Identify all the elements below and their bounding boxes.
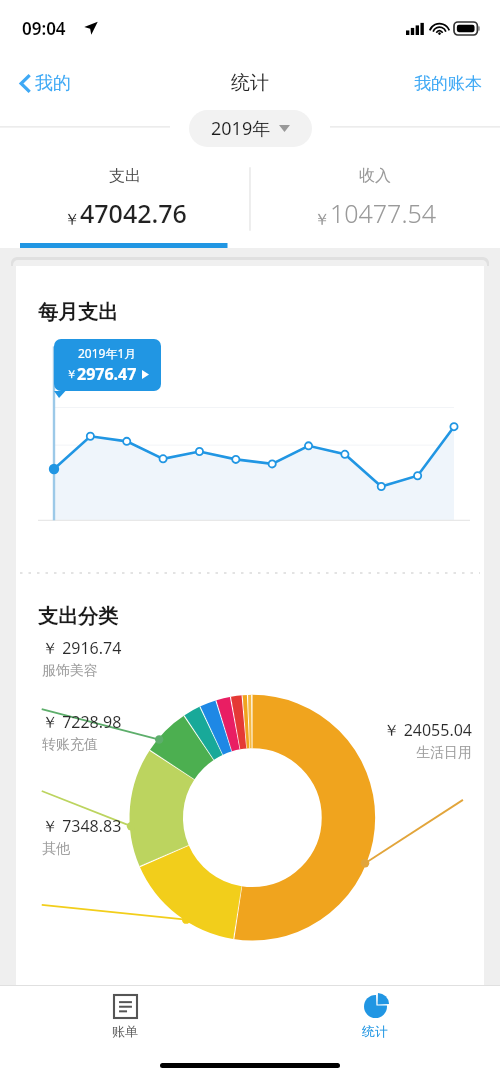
staticText: 每月支出 [38,300,118,325]
staticText: 收入 [359,166,391,186]
staticText: 47042.76 [80,196,187,230]
button[interactable]: 统计 [250,986,500,1048]
staticText: 账单 [112,1023,138,1039]
staticText: ￥ [64,210,80,230]
staticText: ￥ 7348.83 [42,815,122,837]
staticText: 支出 [109,166,141,186]
staticText: 2976.47 [77,363,137,385]
staticText: 生活日用 [416,744,472,762]
button[interactable]: 2019年 [189,110,312,147]
button[interactable]: 账单 [0,986,250,1048]
staticText: 10477.54 [330,196,437,230]
staticText: ￥ 24055.04 [383,719,472,741]
button[interactable]: ￥ 7228.98 [42,711,122,754]
button[interactable]: ￥ 7348.83 [42,815,122,858]
button[interactable]: 我的 [14,66,77,101]
button[interactable]: ￥ 2916.74 [42,637,122,680]
staticText: 2019年 [211,116,271,141]
button[interactable]: 2019年1月 [54,339,161,391]
button[interactable]: 收入 [250,152,500,248]
staticText: 转账充值 [42,736,98,754]
staticText: 我的 [35,72,71,95]
button[interactable]: 支出 [0,152,250,248]
staticText: 统计 [231,71,269,95]
staticText: 支出分类 [38,604,118,629]
staticText: 其他 [42,840,70,858]
button[interactable]: ￥ 24055.04 [383,719,472,762]
staticText: ￥ 2916.74 [42,637,122,659]
staticText: 09:04 [22,17,66,40]
staticText: 统计 [362,1023,388,1039]
staticText: ￥ [314,210,330,230]
staticText: ￥ 7228.98 [42,711,122,733]
button[interactable]: 我的账本 [396,65,500,102]
staticText: 服饰美容 [42,662,98,680]
staticText: 2019年1月 [78,345,137,361]
staticText: ￥ [66,367,77,381]
